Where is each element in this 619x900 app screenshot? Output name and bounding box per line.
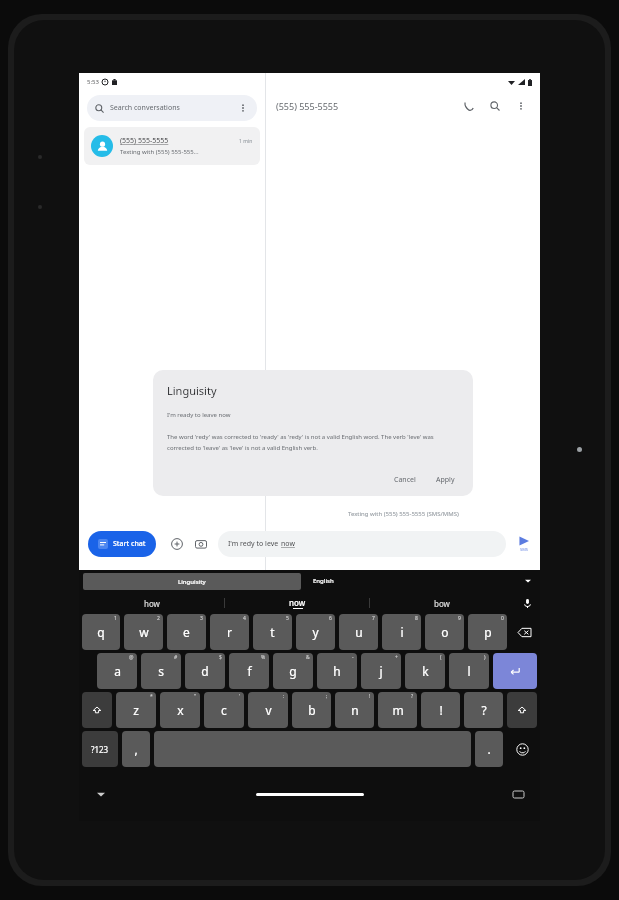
staticText: u (355, 624, 363, 640)
button[interactable]: (555) 555-5555 (84, 127, 260, 165)
button[interactable]: 2 (124, 614, 163, 650)
staticText: ; (326, 693, 328, 700)
staticText: Linguisity (167, 383, 217, 398)
button[interactable]: ? (464, 692, 503, 728)
button[interactable]: Apply (430, 472, 461, 488)
staticText: 3 (200, 615, 203, 622)
button[interactable]: $ (185, 653, 225, 689)
button[interactable]: English (301, 577, 520, 585)
button[interactable]: ! (421, 692, 460, 728)
button[interactable]: Hide keyboard (79, 767, 123, 821)
button[interactable]: Voice input (514, 592, 540, 614)
button[interactable]: 7 (339, 614, 378, 650)
button[interactable]: Call (460, 97, 478, 115)
button[interactable]: Expand (520, 573, 536, 589)
button[interactable]: Send SMS (512, 535, 536, 552)
staticText: l (467, 663, 471, 679)
button[interactable]: ' (204, 692, 244, 728)
button[interactable]: bow (370, 592, 514, 614)
button[interactable]: : (248, 692, 288, 728)
button[interactable]: ) (449, 653, 489, 689)
staticText: Texting with (555) 555-5555 (SMS/MMS) (348, 510, 459, 518)
staticText: how (144, 598, 160, 609)
button[interactable]: Cancel (388, 472, 422, 488)
staticText: i (400, 624, 404, 640)
button[interactable]: how (79, 592, 224, 614)
staticText: Apply (436, 475, 455, 485)
staticText: 7 (372, 615, 375, 622)
staticText: SMS (520, 547, 529, 552)
button[interactable]: + (361, 653, 401, 689)
staticText: ( (440, 654, 442, 661)
button[interactable]: 4 (210, 614, 249, 650)
staticText: n (351, 702, 359, 718)
staticText: ! (369, 693, 371, 700)
staticText: & (306, 654, 310, 661)
staticText: 8 (415, 615, 418, 622)
button[interactable]: ( (405, 653, 445, 689)
button[interactable]: More options (512, 97, 530, 115)
staticText: p (484, 624, 492, 640)
button[interactable]: @ (97, 653, 137, 689)
button[interactable]: Enter (493, 653, 537, 689)
button[interactable]: 5 (253, 614, 292, 650)
staticText: 4 (243, 615, 246, 622)
button[interactable]: # (141, 653, 181, 689)
staticText: y (312, 624, 319, 640)
button[interactable]: 1 (82, 614, 120, 650)
staticText: 5:53 (87, 78, 99, 86)
button[interactable]: - (317, 653, 357, 689)
button[interactable]: . (475, 731, 503, 767)
button[interactable]: Take photo (191, 534, 211, 554)
button[interactable]: I'm redy to leve (218, 531, 506, 557)
staticText: ' (239, 693, 241, 700)
staticText: Cancel (394, 475, 416, 485)
button[interactable]: ?123 (82, 731, 118, 767)
button[interactable]: Linguisity (83, 573, 301, 590)
staticText: 1 (114, 615, 117, 622)
staticText: 6 (329, 615, 332, 622)
button[interactable]: " (160, 692, 200, 728)
button[interactable]: 8 (382, 614, 421, 650)
button[interactable]: Start chat (88, 531, 156, 557)
button[interactable]: ! (335, 692, 374, 728)
staticText: # (174, 654, 178, 661)
staticText: Search conversations (110, 103, 237, 113)
button[interactable]: Add attachment (167, 534, 187, 554)
staticText: e (183, 624, 190, 640)
staticText: " (194, 693, 197, 700)
staticText: Start chat (113, 539, 146, 549)
button[interactable]: 9 (425, 614, 464, 650)
staticText: , (134, 741, 138, 757)
button[interactable]: Emoji (507, 731, 537, 767)
button[interactable]: now (225, 592, 369, 614)
button[interactable]: Backspace (509, 614, 539, 650)
button[interactable]: ? (378, 692, 417, 728)
button[interactable]: Search (486, 97, 504, 115)
button[interactable]: & (273, 653, 313, 689)
button[interactable]: , (122, 731, 150, 767)
staticText: 5 (286, 615, 289, 622)
staticText: (555) 555-5555 (276, 100, 460, 112)
button[interactable]: Shift (507, 692, 537, 728)
button[interactable]: Shift (82, 692, 112, 728)
button[interactable]: 6 (296, 614, 335, 650)
button[interactable]: * (116, 692, 156, 728)
staticText: c (221, 702, 227, 718)
staticText: r (227, 624, 232, 640)
button[interactable]: 0 (468, 614, 507, 650)
staticText: j (379, 663, 383, 679)
staticText: (555) 555-5555 (120, 136, 239, 146)
button[interactable]: Search conversations (87, 95, 257, 121)
button[interactable]: ; (292, 692, 331, 728)
staticText: x (177, 702, 184, 718)
staticText: I'm ready to leave now (167, 411, 231, 419)
button[interactable]: More options (237, 102, 249, 114)
staticText: v (265, 702, 272, 718)
button[interactable]: Switch keyboard (496, 767, 540, 821)
staticText: 0 (501, 615, 504, 622)
button[interactable]: % (229, 653, 269, 689)
button[interactable]: 3 (167, 614, 206, 650)
staticText: m (392, 702, 404, 718)
